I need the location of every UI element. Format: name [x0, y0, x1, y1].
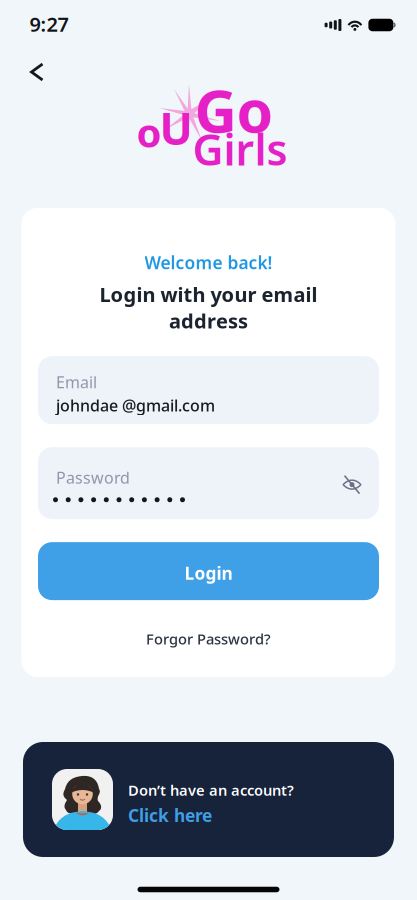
staticText: Click here: [128, 804, 212, 827]
staticText: Girls: [192, 121, 287, 177]
button[interactable]: Back: [20, 55, 54, 89]
staticText: Login: [184, 562, 232, 585]
staticText: 9:27: [29, 11, 68, 37]
staticText: Password: [56, 467, 130, 488]
button[interactable]: Forgor Password?: [146, 629, 271, 649]
staticText: address: [169, 308, 248, 334]
button[interactable]: Show password: [342, 475, 362, 494]
button[interactable]: Sign up: [23, 742, 394, 857]
staticText: o: [136, 105, 161, 158]
button[interactable]: Login: [38, 542, 379, 600]
staticText: Go: [194, 71, 273, 149]
staticText: Login with your email: [99, 281, 317, 308]
staticText: Email: [56, 371, 97, 393]
staticText: johndae @gmail.com: [56, 395, 215, 416]
staticText: Forgor Password?: [146, 629, 271, 649]
staticText: Don’t have an account?: [128, 780, 294, 800]
staticText: U: [159, 99, 192, 157]
staticText: Welcome back!: [144, 251, 272, 274]
